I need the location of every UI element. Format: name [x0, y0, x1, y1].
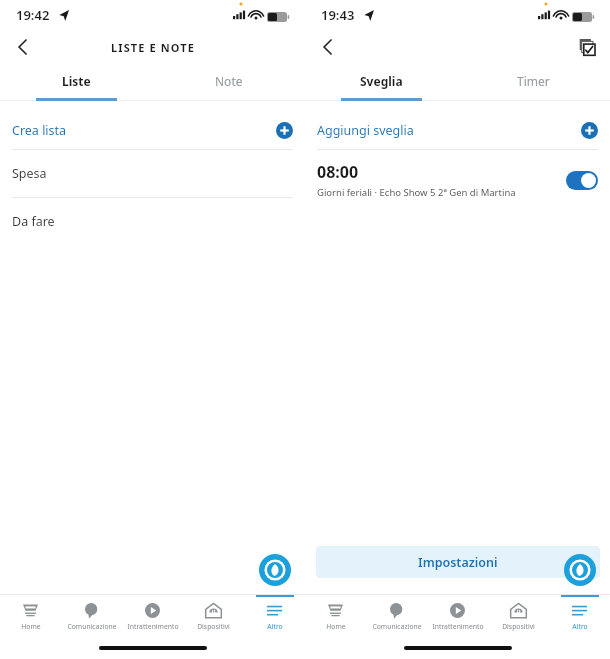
staticText: Dispositivi — [197, 622, 230, 631]
button[interactable]: Home — [0, 595, 61, 637]
button[interactable]: 08:00 — [305, 150, 610, 210]
staticText: Sveglia — [360, 73, 403, 89]
button[interactable]: Da fare — [0, 198, 305, 245]
staticText: Intrattenimento — [127, 622, 179, 631]
button[interactable]: Altro — [244, 595, 305, 637]
button[interactable]: Home — [305, 595, 366, 637]
button[interactable]: Impostazioni — [316, 546, 600, 578]
staticText: Spesa — [12, 165, 47, 182]
button[interactable]: Back — [313, 32, 343, 62]
staticText: 19:43 — [321, 6, 355, 24]
button[interactable]: Timer — [457, 64, 610, 98]
button[interactable]: Dispositivi — [488, 595, 549, 637]
staticText: Giorni feriali · Echo Show 5 2ª Gen di M… — [317, 186, 516, 199]
button[interactable]: Note — [152, 64, 305, 98]
button[interactable]: Altro — [549, 595, 610, 637]
button[interactable]: Comunicazione — [61, 595, 122, 637]
button[interactable]: Aggiungi sveglia — [305, 111, 610, 149]
staticText: 19:42 — [16, 6, 50, 24]
button[interactable]: Comunicazione — [366, 595, 427, 637]
staticText: Altro — [572, 622, 588, 631]
button[interactable]: Spesa — [0, 150, 305, 197]
staticText: Da fare — [12, 213, 55, 230]
staticText: Home — [326, 622, 346, 631]
button[interactable]: Alexa — [564, 554, 596, 586]
button[interactable]: Intrattenimento — [427, 595, 488, 637]
staticText: Note — [215, 73, 243, 89]
staticText: Comunicazione — [67, 622, 117, 631]
staticText: Home — [21, 622, 41, 631]
button[interactable]: Intrattenimento — [122, 595, 183, 637]
staticText: Impostazioni — [418, 554, 498, 571]
button[interactable]: Back — [8, 32, 38, 62]
button[interactable]: Dispositivi — [183, 595, 244, 637]
staticText: Dispositivi — [502, 622, 535, 631]
staticText: Timer — [517, 73, 550, 89]
button[interactable]: Alarm on — [566, 171, 598, 190]
staticText: Altro — [267, 622, 283, 631]
staticText: Liste — [62, 73, 91, 89]
staticText: LISTE E NOTE — [111, 40, 195, 55]
staticText: Aggiungi sveglia — [317, 122, 414, 139]
staticText: Intrattenimento — [432, 622, 484, 631]
staticText: Comunicazione — [372, 622, 422, 631]
button[interactable]: Liste — [0, 64, 152, 98]
staticText: 08:00 — [317, 161, 359, 183]
button[interactable]: Crea lista — [0, 111, 305, 149]
button[interactable]: Edit — [572, 33, 600, 61]
button[interactable]: Sveglia — [305, 64, 457, 98]
staticText: Crea lista — [12, 122, 67, 139]
button[interactable]: Alexa — [259, 554, 291, 586]
